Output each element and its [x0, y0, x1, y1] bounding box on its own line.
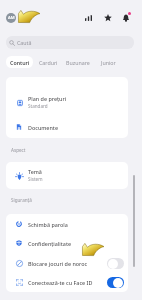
staticText: Confidențialitate [28, 240, 72, 247]
button[interactable]: Blocare jocuri de noroc [107, 258, 124, 269]
button[interactable] [6, 116, 128, 137]
button[interactable] [6, 273, 128, 292]
button[interactable]: Statistics [82, 11, 95, 24]
button[interactable]: Carduri [35, 56, 61, 68]
staticText: Standard [28, 103, 48, 109]
button[interactable]: Caută [6, 36, 134, 49]
button[interactable]: Buzunare [62, 56, 93, 68]
staticText: Junior [101, 59, 116, 66]
button[interactable] [6, 253, 128, 272]
staticText: Buzunare [66, 59, 90, 66]
button[interactable]: Conectează-te cu Face ID [107, 277, 124, 288]
staticText: Aspect [11, 147, 26, 153]
staticText: Conturi [10, 59, 30, 66]
button[interactable] [6, 89, 128, 116]
staticText: Siguranță [11, 197, 32, 203]
button[interactable] [6, 234, 128, 253]
staticText: Temă [28, 168, 42, 175]
staticText: Schimbă parola [28, 221, 68, 228]
button[interactable]: Conturi [6, 56, 33, 68]
staticText: AM [8, 15, 15, 21]
staticText: Caută [17, 39, 32, 46]
staticText: Plan de prețuri [28, 95, 67, 102]
button[interactable]: Profile [6, 13, 16, 23]
staticText: Carduri [39, 59, 58, 66]
button[interactable] [6, 162, 128, 189]
button[interactable] [6, 214, 128, 233]
staticText: Blocare jocuri de noroc [28, 260, 88, 267]
staticText: Documente [28, 124, 58, 131]
staticText: Conectează-te cu Face ID [28, 279, 93, 286]
button[interactable]: Junior [95, 56, 121, 68]
button[interactable]: Favorites [101, 11, 114, 24]
staticText: Sistem [28, 176, 43, 182]
button[interactable]: Notifications [119, 11, 132, 24]
